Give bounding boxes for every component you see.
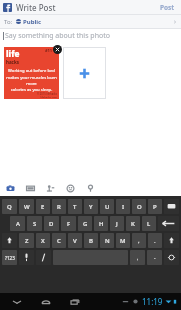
button[interactable]: , — [132, 233, 146, 248]
button[interactable]: U — [100, 199, 114, 214]
button[interactable]: Tag people — [45, 183, 56, 194]
staticText: , — [138, 237, 140, 245]
button[interactable]: X — [36, 233, 50, 248]
button[interactable]: Home — [38, 294, 54, 310]
button[interactable]: Check in — [85, 183, 96, 194]
button[interactable]: T — [68, 199, 82, 214]
button[interactable]: Remove photo — [53, 45, 62, 54]
button[interactable]: Camera — [5, 183, 16, 194]
button[interactable]: Facebook — [3, 3, 12, 12]
button[interactable]: L — [142, 216, 156, 231]
button[interactable]: To: — [0, 15, 181, 28]
button[interactable]: Back — [9, 294, 25, 310]
button[interactable]: Shift — [164, 233, 179, 248]
button[interactable]: Feeling — [65, 183, 76, 194]
button[interactable]: A — [10, 216, 25, 231]
button[interactable]: K — [126, 216, 140, 231]
staticText: G — [83, 220, 88, 228]
staticText: Say something about this photo — [5, 31, 110, 41]
button[interactable]: Enter — [158, 216, 179, 231]
staticText: K — [131, 220, 135, 228]
button[interactable]: . — [148, 233, 162, 248]
button[interactable]: F — [61, 216, 76, 231]
staticText: I — [122, 203, 125, 211]
staticText: R — [57, 203, 61, 211]
button[interactable]: Y — [84, 199, 98, 214]
button[interactable]: R — [52, 199, 66, 214]
button[interactable]: E — [36, 199, 50, 214]
button[interactable]: Recents — [67, 294, 83, 310]
staticText: F — [67, 220, 71, 228]
button[interactable]: V — [68, 233, 82, 248]
staticText: H — [99, 220, 104, 228]
button[interactable]: H — [94, 216, 108, 231]
button[interactable]: Delete — [164, 199, 179, 214]
button[interactable]: Post — [156, 1, 179, 14]
staticText: V — [73, 237, 77, 245]
staticText: T — [73, 203, 77, 211]
button[interactable]: O — [132, 199, 146, 214]
button[interactable]: P — [148, 199, 162, 214]
button[interactable]: Shift — [2, 233, 17, 248]
staticText: L — [147, 220, 151, 228]
button[interactable]: M — [116, 233, 130, 248]
button[interactable]: Q — [2, 199, 17, 214]
staticText: , — [137, 255, 139, 261]
button[interactable]: G — [78, 216, 92, 231]
button[interactable]: Photo album — [25, 183, 36, 194]
staticText: S — [33, 220, 37, 228]
staticText: E — [41, 203, 45, 211]
staticText: Y — [89, 203, 93, 211]
button[interactable]: Add photo — [63, 47, 106, 99]
staticText: Post — [160, 3, 175, 12]
button[interactable]: Settings — [36, 250, 51, 265]
button[interactable]: D — [44, 216, 59, 231]
staticText: Q — [7, 203, 12, 211]
staticText: life — [6, 48, 20, 59]
staticText: #11 — [45, 48, 53, 53]
staticText: Public — [23, 18, 42, 26]
button[interactable]: life — [4, 47, 59, 99]
staticText: X — [41, 237, 45, 245]
staticText: M — [120, 237, 126, 245]
button[interactable]: Z — [19, 233, 34, 248]
button[interactable]: , — [130, 250, 145, 265]
staticText: W — [24, 203, 30, 211]
staticText: 11:19 — [142, 296, 163, 307]
staticText: A — [16, 220, 20, 228]
staticText: Z — [25, 237, 29, 245]
staticText: B — [89, 237, 93, 245]
button[interactable]: W — [19, 199, 34, 214]
button[interactable]: B — [84, 233, 98, 248]
button[interactable]: I — [116, 199, 130, 214]
staticText: C — [57, 237, 61, 245]
button[interactable]: C — [52, 233, 66, 248]
staticText: P — [153, 203, 157, 211]
staticText: Working out before bed makes your muscle… — [6, 68, 57, 92]
button[interactable]: N — [100, 233, 114, 248]
staticText: Write Post — [16, 2, 56, 13]
staticText: D — [49, 220, 54, 228]
button[interactable]: Emoji — [164, 250, 179, 265]
button[interactable]: S — [27, 216, 42, 231]
button[interactable]: ?123 — [2, 250, 17, 265]
staticText: J — [116, 220, 118, 228]
staticText: ?123 — [5, 255, 15, 261]
staticText: To: — [4, 18, 13, 26]
button[interactable]: J — [110, 216, 124, 231]
staticText: N — [105, 237, 110, 245]
button[interactable]: Voice input — [19, 250, 34, 265]
staticText: . — [154, 237, 156, 245]
staticText: hacks — [6, 59, 19, 65]
button[interactable]: Say something about this photo — [0, 29, 181, 42]
button[interactable]: - — [147, 250, 162, 265]
staticText: - — [154, 255, 156, 261]
staticText: U — [105, 203, 110, 211]
staticText: © 2015 lifehacks lifehacks.com — [4, 92, 57, 98]
staticText: O — [137, 203, 142, 211]
